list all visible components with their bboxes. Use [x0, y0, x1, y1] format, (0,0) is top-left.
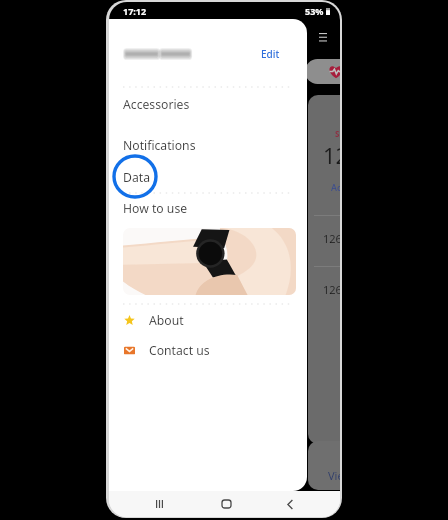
staticText: 53% [305, 5, 324, 17]
staticText: S [335, 128, 340, 139]
button[interactable]: Recents [148, 493, 170, 515]
staticText: Accessories [123, 96, 190, 113]
staticText: About [149, 312, 184, 329]
button[interactable]: Accessories [109, 94, 307, 114]
button[interactable]: Contact us [109, 338, 307, 362]
button[interactable] [305, 59, 340, 84]
button[interactable]: Back [279, 493, 301, 515]
button[interactable]: Vie [308, 441, 340, 490]
button[interactable]: Data [109, 167, 307, 187]
button[interactable]: Edit [109, 41, 307, 67]
button[interactable]: Notifications [109, 135, 307, 155]
staticText: Notifications [123, 137, 196, 154]
button[interactable] [123, 228, 296, 295]
staticText: Data [123, 169, 150, 186]
staticText: Ac [331, 181, 340, 193]
staticText: Vie [328, 468, 340, 483]
button[interactable]: Home [215, 493, 237, 515]
button[interactable]: About [109, 308, 307, 332]
staticText: 17:12 [123, 5, 147, 17]
button[interactable]: Menu [316, 30, 330, 44]
staticText: Edit [261, 47, 280, 61]
staticText: How to use [123, 200, 188, 217]
staticText: 12 [323, 140, 340, 170]
staticText: 126 [323, 231, 340, 246]
staticText: 126 [323, 282, 340, 297]
staticText: Contact us [149, 342, 210, 359]
